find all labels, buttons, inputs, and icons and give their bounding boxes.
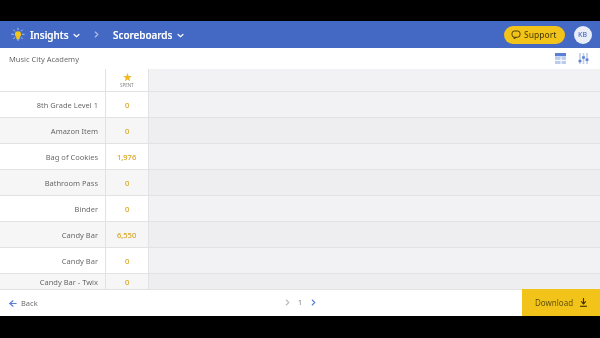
button[interactable]: Candy Bar [0,248,600,273]
staticText: Bag of Cookies [45,152,98,162]
staticText: 0 [125,204,130,214]
staticText: Music City Academy [9,54,79,64]
staticText: Binder [74,204,98,214]
staticText: Download [535,297,574,308]
button[interactable]: Table view [552,50,569,67]
staticText: 8th Grade Level 1 [36,100,98,110]
staticText: Candy Bar [61,230,98,240]
staticText: 1 [298,298,303,308]
button[interactable]: Previous page [280,295,295,310]
button[interactable]: Download [522,289,600,316]
button[interactable]: Support [504,26,565,44]
button[interactable]: Binder [0,196,600,221]
button[interactable]: Candy Bar [0,222,600,247]
staticText: Support [524,29,557,41]
button[interactable]: Filters [575,50,592,67]
staticText: 6,550 [117,230,137,240]
staticText: Back [21,298,38,308]
button[interactable]: Amazon Item [0,118,600,143]
button[interactable]: Back [0,294,44,312]
staticText: 0 [125,256,130,266]
staticText: 0 [125,100,130,110]
staticText: 0 [125,126,130,136]
button[interactable]: Insights [8,26,83,44]
staticText: Candy Bar [61,256,98,266]
button[interactable]: Next page [306,295,321,310]
staticText: 0 [125,178,130,188]
button[interactable]: Bag of Cookies [0,144,600,169]
staticText: KB [578,30,588,40]
button[interactable]: Candy Bar - Twix [0,274,600,289]
button[interactable]: Scoreboards [110,26,187,44]
button[interactable]: 8th Grade Level 1 [0,92,600,117]
staticText: Insights [30,28,69,42]
staticText: Bathroom Pass [44,178,98,188]
staticText: Candy Bar - Twix [39,277,98,287]
button[interactable]: Bathroom Pass [0,170,600,195]
button[interactable]: KB [574,26,592,44]
staticText: Scoreboards [113,28,173,42]
staticText: SPENT [120,82,134,88]
staticText: 1,976 [117,152,137,162]
staticText: Amazon Item [50,126,98,136]
staticText: 0 [125,277,130,287]
